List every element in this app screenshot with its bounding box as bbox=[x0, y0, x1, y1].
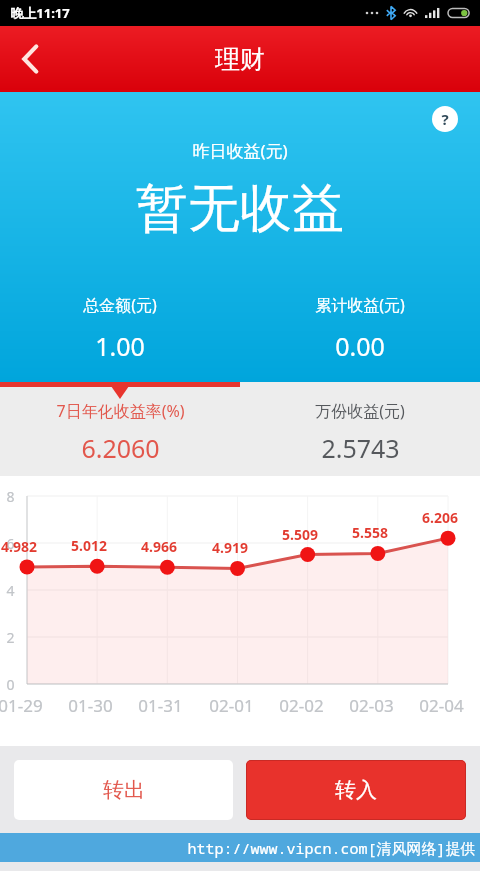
staticText: 4.982 bbox=[1, 537, 37, 556]
staticText: 6.2060 bbox=[81, 431, 160, 465]
staticText: 8 bbox=[6, 487, 15, 506]
staticText: 转入 bbox=[335, 777, 377, 803]
button[interactable]: 7日年化收益率(%) bbox=[0, 400, 240, 465]
staticText: 1.00 bbox=[95, 329, 145, 363]
staticText: 2 bbox=[6, 628, 15, 647]
button[interactable]: 累计收益(元) bbox=[240, 294, 480, 363]
staticText: 4 bbox=[6, 581, 15, 600]
staticText: 02-04 bbox=[419, 694, 464, 717]
staticText: 02-01 bbox=[209, 694, 254, 717]
button[interactable]: 转出 bbox=[14, 760, 233, 820]
staticText: 02-02 bbox=[279, 694, 324, 717]
staticText: 理财 bbox=[215, 44, 265, 75]
staticText: 万份收益(元) bbox=[315, 400, 405, 422]
staticText: 4.919 bbox=[212, 538, 248, 557]
staticText: 转出 bbox=[103, 777, 145, 803]
staticText: 6.206 bbox=[422, 508, 458, 527]
staticText: 02-03 bbox=[349, 694, 394, 717]
staticText: 6 bbox=[6, 534, 15, 553]
button[interactable]: Back bbox=[0, 26, 60, 92]
staticText: 0.00 bbox=[335, 329, 385, 363]
staticText: ? bbox=[441, 109, 449, 129]
staticText: 总金额(元) bbox=[83, 294, 157, 316]
staticText: 昨日收益(元) bbox=[192, 139, 288, 162]
staticText: 5.509 bbox=[282, 525, 318, 544]
staticText: 01-30 bbox=[68, 694, 113, 717]
staticText: 01-31 bbox=[138, 694, 183, 717]
button[interactable]: 转入 bbox=[246, 760, 466, 820]
staticText: http://www.vipcn.com[清风网络]提供 bbox=[187, 838, 476, 858]
staticText: 0 bbox=[6, 675, 15, 694]
button[interactable]: 万份收益(元) bbox=[240, 400, 480, 465]
staticText: 暂无收益 bbox=[136, 176, 344, 242]
staticText: 4.966 bbox=[141, 537, 177, 556]
staticText: 2.5743 bbox=[321, 431, 400, 465]
button[interactable]: 总金额(元) bbox=[0, 294, 240, 363]
staticText: 01-29 bbox=[0, 694, 43, 717]
staticText: 5.558 bbox=[352, 523, 388, 542]
button[interactable]: Help bbox=[426, 100, 464, 138]
staticText: 晚上11:17 bbox=[10, 4, 70, 22]
staticText: 5.012 bbox=[71, 536, 107, 555]
staticText: 7日年化收益率(%) bbox=[56, 400, 185, 422]
staticText: 累计收益(元) bbox=[315, 294, 405, 316]
